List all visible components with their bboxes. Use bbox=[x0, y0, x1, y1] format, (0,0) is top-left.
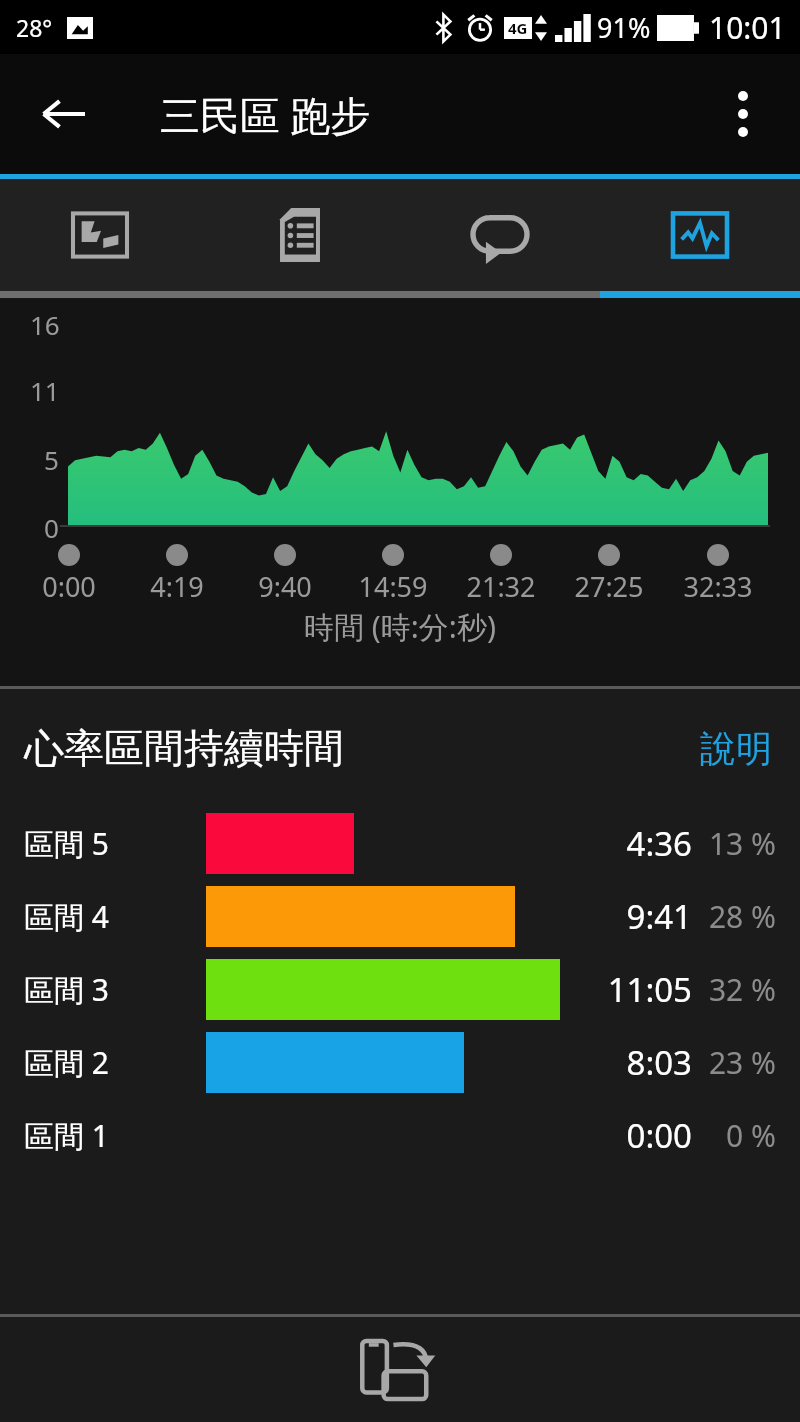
staticText: 9:41 bbox=[626, 894, 692, 939]
staticText: 0:00 bbox=[42, 568, 96, 605]
staticText: 區間 2 bbox=[24, 1042, 109, 1083]
staticText: 91% bbox=[597, 9, 651, 46]
button[interactable]: 區間 5 bbox=[0, 807, 800, 880]
staticText: 0:00 bbox=[626, 1113, 692, 1158]
other: Details bbox=[273, 208, 327, 262]
staticText: 9:40 bbox=[258, 568, 312, 605]
button[interactable]: 區間 1 bbox=[0, 1099, 800, 1172]
staticText: 32:33 bbox=[683, 568, 753, 605]
staticText: 區間 3 bbox=[24, 969, 109, 1010]
other: Map bbox=[73, 208, 127, 262]
staticText: 28 % bbox=[708, 896, 776, 937]
button[interactable]: 說明 bbox=[688, 716, 784, 781]
staticText: 0 % bbox=[726, 1115, 776, 1156]
button[interactable]: 區間 3 bbox=[0, 953, 800, 1026]
other: Laps bbox=[473, 208, 527, 262]
staticText: 13 % bbox=[708, 823, 776, 864]
staticText: 區間 4 bbox=[24, 896, 109, 937]
staticText: 11 bbox=[30, 373, 60, 408]
button[interactable]: Back bbox=[24, 75, 102, 153]
staticText: 時間 (時:分:秒) bbox=[304, 606, 496, 647]
staticText: 說明 bbox=[700, 726, 772, 771]
button[interactable]: Map bbox=[0, 179, 200, 291]
staticText: 區間 5 bbox=[24, 823, 109, 864]
staticText: 16 bbox=[30, 307, 60, 342]
staticText: 4:36 bbox=[626, 821, 692, 866]
other: Heart rate graph bbox=[673, 208, 727, 262]
button[interactable]: 區間 4 bbox=[0, 880, 800, 953]
staticText: 4G bbox=[508, 18, 528, 38]
staticText: 27:25 bbox=[574, 568, 644, 605]
staticText: 23 % bbox=[708, 1042, 776, 1083]
staticText: 區間 1 bbox=[24, 1115, 109, 1156]
staticText: 0 bbox=[44, 510, 59, 545]
staticText: 5 bbox=[44, 442, 59, 477]
staticText: 4:19 bbox=[150, 568, 204, 605]
button[interactable]: Rotate screen bbox=[346, 1329, 454, 1411]
button[interactable]: 區間 2 bbox=[0, 1026, 800, 1099]
staticText: 心率區間持續時間 bbox=[24, 723, 344, 773]
button[interactable]: More options bbox=[706, 77, 780, 151]
staticText: 28° bbox=[16, 12, 53, 43]
staticText: 21:32 bbox=[466, 568, 536, 605]
staticText: 8:03 bbox=[626, 1040, 692, 1085]
staticText: 11:05 bbox=[607, 967, 692, 1012]
staticText: 10:01 bbox=[709, 7, 786, 48]
staticText: 14:59 bbox=[358, 568, 428, 605]
button[interactable]: Laps bbox=[400, 179, 600, 291]
button[interactable]: Heart rate graph bbox=[600, 179, 800, 291]
staticText: 32 % bbox=[708, 969, 776, 1010]
staticText: 三民區 跑步 bbox=[160, 87, 371, 142]
button[interactable]: Details bbox=[200, 179, 400, 291]
